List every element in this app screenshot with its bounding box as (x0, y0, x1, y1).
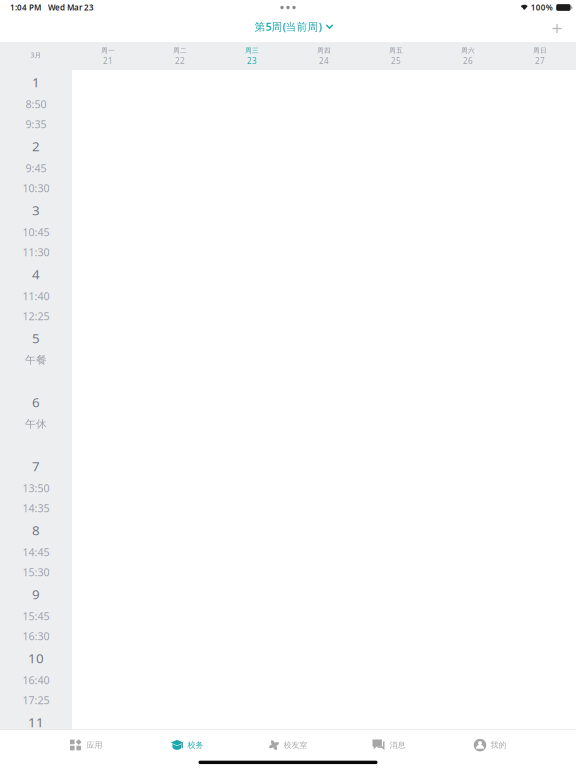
staticText: 10:30 (22, 181, 49, 195)
staticText: 周五 (389, 46, 403, 55)
staticText: 周三 (245, 46, 259, 55)
staticText: 27 (535, 55, 545, 66)
staticText: 16:40 (22, 673, 49, 687)
staticText: 15:45 (22, 609, 49, 623)
staticText: 13:50 (22, 481, 49, 495)
staticText: 17:25 (22, 693, 49, 707)
staticText: 周四 (317, 46, 331, 55)
staticText: 8 (32, 521, 40, 539)
staticText: 11:40 (22, 289, 49, 303)
staticText: 14:35 (22, 501, 49, 515)
staticText: 4 (32, 265, 40, 283)
button[interactable]: 我的 (439, 730, 540, 760)
staticText: 1:04 PM (10, 2, 41, 13)
staticText: 9:35 (25, 117, 46, 131)
staticText: 第5周(当前周) (254, 19, 321, 34)
staticText: 校务 (187, 740, 203, 750)
button[interactable]: 应用 (35, 730, 136, 760)
staticText: 午餐 (25, 353, 47, 366)
staticText: 100% (531, 2, 553, 13)
staticText: Wed Mar 23 (48, 2, 94, 13)
staticText: 16:30 (22, 629, 49, 643)
staticText: 5 (32, 329, 40, 347)
staticText: 午休 (25, 417, 47, 430)
staticText: 1 (32, 73, 40, 91)
staticText: 周一 (101, 46, 115, 55)
staticText: 12:25 (22, 309, 49, 323)
staticText: 6 (32, 393, 40, 411)
button[interactable]: 校友室 (237, 730, 338, 760)
staticText: 7 (32, 457, 40, 475)
staticText: 21 (103, 55, 113, 66)
staticText: 3月 (30, 51, 41, 59)
staticText: 25 (391, 55, 401, 66)
staticText: 消息 (389, 740, 405, 750)
staticText: 9 (32, 585, 40, 603)
staticText: 26 (463, 55, 473, 66)
button[interactable]: 校务 (136, 730, 237, 760)
staticText: 24 (319, 55, 329, 66)
staticText: 校友室 (283, 740, 307, 750)
staticText: 周六 (461, 46, 475, 55)
button[interactable]: 消息 (338, 730, 439, 760)
staticText: 2 (32, 137, 40, 155)
staticText: 周日 (533, 46, 547, 55)
staticText: 11 (28, 713, 44, 731)
staticText: 14:45 (22, 545, 49, 559)
staticText: 3 (32, 201, 40, 219)
staticText: 10:45 (22, 225, 49, 239)
staticText: 10 (28, 649, 44, 667)
staticText: 22 (175, 55, 185, 66)
staticText: 23 (247, 55, 257, 66)
staticText: 我的 (490, 740, 506, 750)
staticText: 11:30 (22, 245, 49, 259)
staticText: 8:50 (25, 97, 46, 111)
button[interactable]: Add (547, 18, 567, 38)
staticText: 15:30 (22, 565, 49, 579)
staticText: 应用 (86, 740, 102, 750)
staticText: 9:45 (25, 161, 46, 175)
staticText: 周二 (173, 46, 187, 55)
button[interactable]: 第5周(当前周) (250, 15, 337, 38)
